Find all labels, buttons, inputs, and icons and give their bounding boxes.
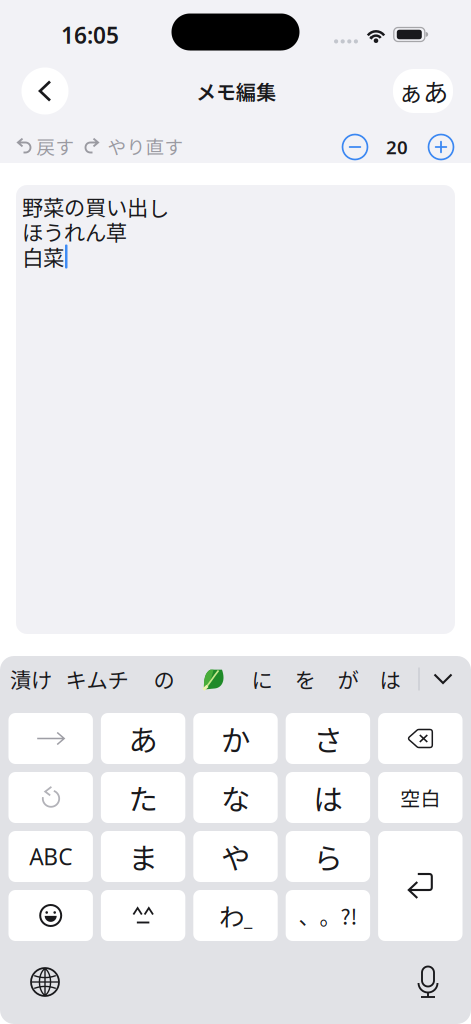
staticText: キムチ bbox=[65, 664, 128, 694]
button[interactable]: 戻す bbox=[12, 126, 76, 166]
button[interactable]: さ bbox=[286, 713, 370, 764]
staticText: は bbox=[379, 664, 400, 694]
button[interactable]: 顔文字 bbox=[101, 890, 185, 941]
button[interactable]: に bbox=[234, 657, 290, 701]
staticText: は bbox=[313, 776, 342, 819]
staticText: メモ編集 bbox=[196, 76, 276, 105]
button[interactable]: 音声入力 bbox=[401, 954, 455, 1010]
staticText: 空白 bbox=[400, 783, 440, 812]
button[interactable]: あ bbox=[101, 713, 185, 764]
staticText: 漬け bbox=[10, 664, 52, 694]
button[interactable]: は bbox=[286, 772, 370, 823]
staticText: わ bbox=[219, 897, 244, 934]
button[interactable]: 戻る bbox=[18, 64, 72, 118]
button[interactable]: ABC bbox=[8, 831, 93, 882]
button[interactable]: 改行 bbox=[378, 831, 462, 941]
button[interactable]: 削除 bbox=[378, 713, 462, 764]
staticText: あ bbox=[129, 717, 158, 760]
staticText: 戻す bbox=[36, 132, 74, 159]
button[interactable]: 文字サイズ bbox=[390, 65, 456, 117]
staticText: 20 bbox=[386, 135, 408, 159]
button[interactable]: 漬け bbox=[3, 657, 59, 701]
staticText: ABC bbox=[29, 841, 72, 871]
button[interactable]: を bbox=[277, 657, 333, 701]
button[interactable]: 次候補 bbox=[8, 713, 93, 764]
button[interactable]: た bbox=[101, 772, 185, 823]
staticText: な bbox=[221, 776, 250, 819]
staticText: の bbox=[153, 664, 174, 694]
staticText: さ bbox=[313, 717, 342, 760]
button[interactable]: 文字を大きく bbox=[420, 127, 462, 167]
staticText: _ bbox=[244, 906, 252, 931]
staticText: 、。?! bbox=[298, 900, 357, 931]
staticText: か bbox=[221, 717, 250, 760]
button[interactable]: が bbox=[320, 657, 376, 701]
staticText: ぁあ bbox=[398, 73, 448, 109]
button[interactable]: ら bbox=[286, 831, 370, 882]
staticText: やり直す bbox=[107, 132, 183, 159]
staticText: を bbox=[294, 664, 315, 694]
button[interactable]: 絵文字 bbox=[8, 890, 93, 941]
button[interactable]: 、。?! bbox=[286, 890, 370, 941]
staticText: に bbox=[251, 664, 272, 694]
staticText: や bbox=[221, 835, 250, 878]
button[interactable]: か bbox=[193, 713, 278, 764]
button[interactable]: やり直す bbox=[87, 126, 181, 166]
staticText: 野菜の買い出し bbox=[22, 191, 169, 222]
staticText: ほうれん草 bbox=[22, 216, 127, 247]
button[interactable]: 白菜 bbox=[191, 657, 237, 701]
button[interactable]: やり直し bbox=[8, 772, 93, 823]
staticText: た bbox=[129, 776, 158, 819]
button[interactable]: キムチ bbox=[69, 657, 125, 701]
button[interactable]: な bbox=[193, 772, 278, 823]
button[interactable]: 空白 bbox=[378, 772, 462, 823]
button[interactable]: キーボードを閉じる bbox=[419, 657, 467, 701]
button[interactable]: の bbox=[136, 657, 192, 701]
button[interactable]: は bbox=[362, 657, 418, 701]
button[interactable]: や bbox=[193, 831, 278, 882]
staticText: ま bbox=[129, 835, 158, 878]
button[interactable]: ま bbox=[101, 831, 185, 882]
button[interactable]: わ bbox=[193, 890, 278, 941]
button[interactable]: 文字を小さく bbox=[334, 127, 376, 167]
button[interactable]: キーボードを切り替え bbox=[16, 954, 74, 1010]
staticText: 16:05 bbox=[61, 20, 119, 50]
staticText: が bbox=[337, 664, 358, 694]
staticText: ら bbox=[313, 835, 342, 878]
staticText: 白菜 bbox=[22, 241, 64, 272]
